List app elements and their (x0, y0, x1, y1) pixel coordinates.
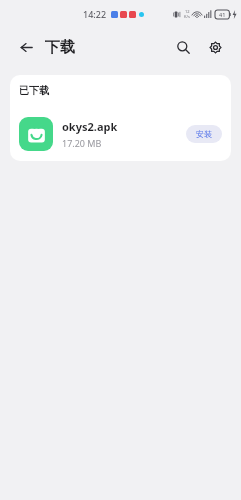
button[interactable]: Back (11, 32, 41, 62)
staticText: 14:22 (83, 8, 107, 20)
staticText: 12 (185, 9, 190, 14)
staticText: 已下载 (19, 84, 49, 97)
staticText: 41 (219, 11, 226, 18)
staticText: K/s (184, 14, 190, 19)
staticText: 下载 (45, 38, 75, 57)
staticText: 安装 (196, 129, 212, 139)
staticText: 17.20 MB (62, 137, 102, 149)
staticText: okys2.apk (62, 119, 118, 134)
button[interactable]: 安装 (186, 125, 222, 143)
button[interactable]: Search (168, 32, 198, 62)
button[interactable]: okys2.apk (10, 107, 231, 161)
button[interactable]: Settings (200, 32, 230, 62)
